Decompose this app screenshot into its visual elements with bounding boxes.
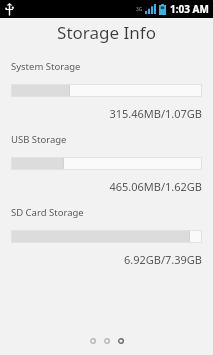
button[interactable]: USB Storage bbox=[0, 127, 213, 200]
button[interactable]: Page bbox=[102, 336, 112, 346]
other: USB connected bbox=[5, 3, 14, 16]
staticText: USB Storage bbox=[11, 133, 67, 146]
staticText: SD Card Storage bbox=[11, 206, 84, 219]
staticText: Storage Info bbox=[57, 21, 156, 44]
staticText: 465.06MB/1.62GB bbox=[11, 179, 202, 194]
button[interactable]: Page bbox=[88, 336, 98, 346]
button[interactable]: System Storage bbox=[0, 54, 213, 127]
staticText: System Storage bbox=[11, 60, 81, 73]
staticText: 315.46MB/1.07GB bbox=[11, 106, 202, 121]
button[interactable]: Current page bbox=[116, 336, 126, 346]
staticText: 3G bbox=[136, 6, 143, 13]
staticText: 1:03 AM bbox=[170, 2, 209, 16]
staticText: 6.92GB/7.39GB bbox=[11, 252, 202, 267]
button[interactable]: SD Card Storage bbox=[0, 200, 213, 273]
